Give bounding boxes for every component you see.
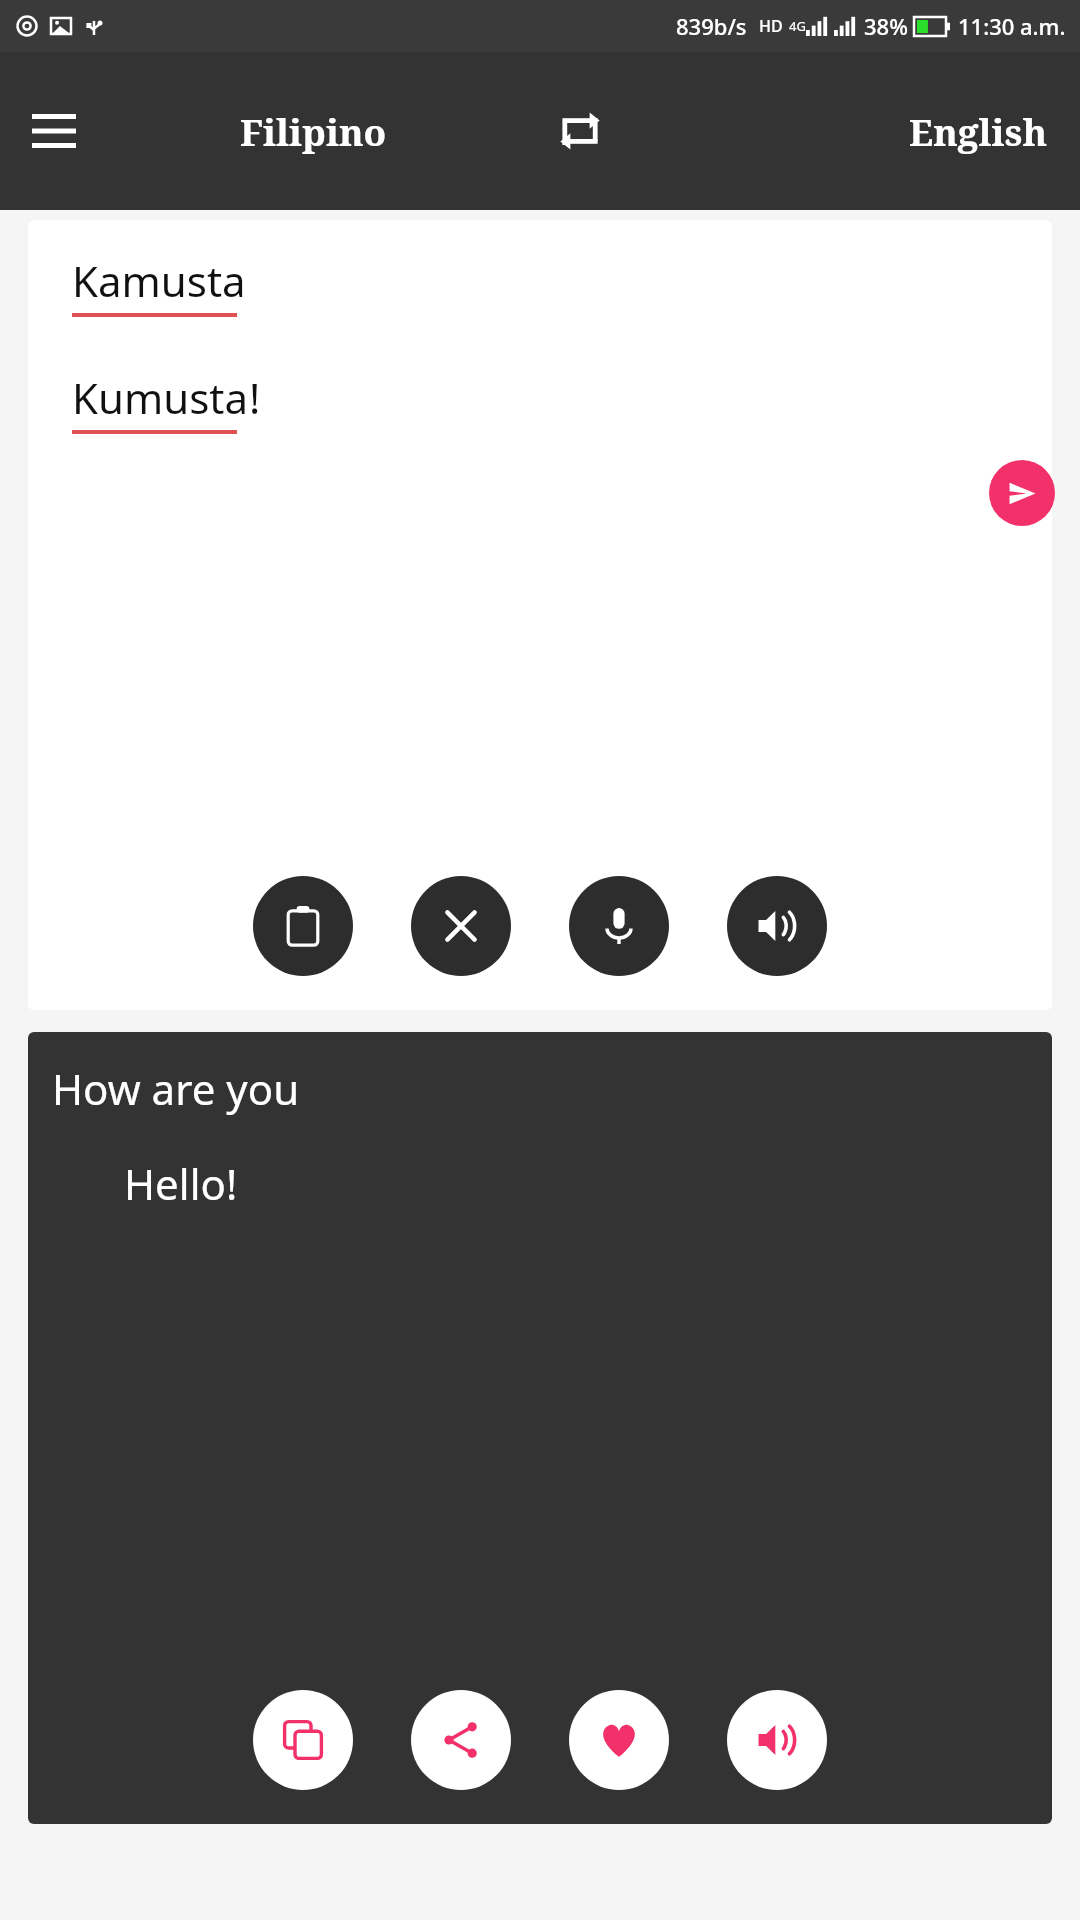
button[interactable]: Filipino [230,98,397,164]
button[interactable]: Clear [411,876,511,976]
button[interactable]: Copy [253,1690,353,1790]
button[interactable]: Favorite [569,1690,669,1790]
button[interactable]: Paste [253,876,353,976]
staticText: How are you [52,1060,300,1117]
staticText: Hello! [124,1155,238,1212]
button[interactable]: Voice input [569,876,669,976]
staticText: Kamusta [72,252,246,309]
staticText: 839b/s [676,11,747,41]
button[interactable]: Speak [727,1690,827,1790]
staticText: Filipino [240,106,387,156]
button[interactable]: Speak [727,876,827,976]
button[interactable]: English [899,98,1058,164]
staticText: HD [759,15,783,37]
button[interactable]: Share [411,1690,511,1790]
button[interactable]: Swap languages [545,96,615,166]
staticText: ! [249,369,261,426]
staticText: Kumusta [72,369,249,426]
button[interactable]: Menu [24,101,84,161]
staticText: 11:30 a.m. [958,11,1066,41]
staticText: 38% [864,11,908,41]
staticText: English [909,106,1048,156]
button[interactable]: Translate [989,460,1055,526]
staticText: 4G [789,17,806,35]
